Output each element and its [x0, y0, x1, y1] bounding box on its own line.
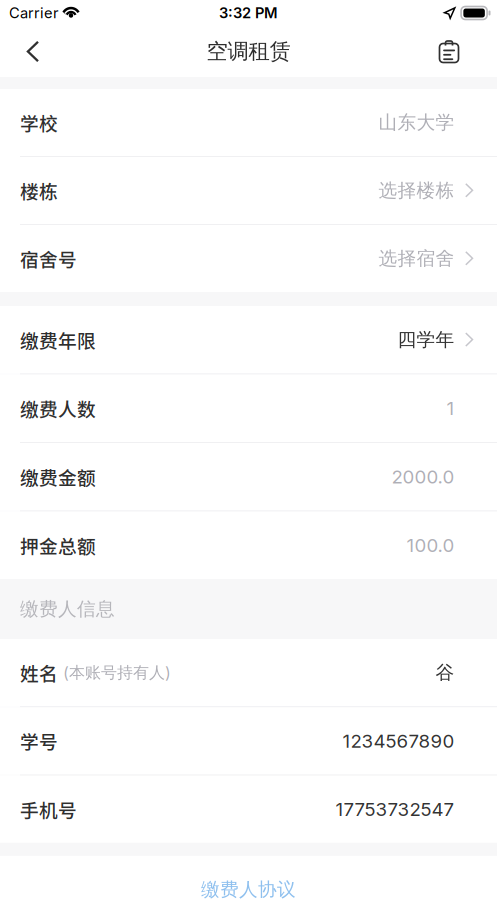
button[interactable]: 返回 — [7, 26, 59, 77]
staticText: 1 — [446, 397, 454, 420]
staticText: 缴费年限 — [20, 326, 96, 353]
button[interactable]: 姓名 — [0, 639, 497, 706]
staticText: 楼栋 — [20, 177, 58, 204]
staticText: 选择楼栋 — [378, 179, 454, 202]
staticText: 100.0 — [406, 534, 454, 557]
staticText: 1234567890 — [342, 730, 454, 752]
staticText: 押金总额 — [20, 532, 96, 559]
button[interactable]: 学校 — [0, 89, 497, 156]
staticText: 17753732547 — [335, 798, 454, 821]
staticText: 缴费人协议 — [201, 878, 296, 901]
staticText: 山东大学 — [378, 111, 454, 134]
button[interactable]: 学号 — [0, 707, 497, 775]
button[interactable]: 缴费人协议 — [0, 856, 497, 902]
staticText: Carrier — [9, 4, 59, 22]
staticText: 宿舍号 — [20, 245, 77, 272]
staticText: 2000.0 — [391, 465, 454, 488]
staticText: 学校 — [20, 109, 58, 136]
staticText: 3:32 PM — [219, 4, 278, 22]
staticText: 选择宿舍 — [378, 247, 454, 270]
staticText: 四学年 — [397, 328, 454, 351]
button[interactable]: 缴费年限 — [0, 306, 497, 373]
staticText: 缴费人数 — [20, 395, 96, 422]
staticText: 缴费金额 — [20, 463, 96, 490]
staticText: 手机号 — [20, 796, 77, 823]
staticText: 学号 — [20, 727, 58, 754]
staticText: 缴费人信息 — [20, 597, 115, 621]
button[interactable]: 手机号 — [0, 776, 497, 843]
staticText: (本账号持有人) — [58, 663, 171, 683]
staticText: 谷 — [435, 661, 454, 684]
button[interactable]: 订单记录 — [423, 26, 475, 77]
button[interactable]: 缴费金额 — [0, 443, 497, 510]
button[interactable]: 楼栋 — [0, 157, 497, 224]
staticText: 姓名 — [20, 659, 58, 686]
button[interactable]: 押金总额 — [0, 511, 497, 579]
button[interactable]: 宿舍号 — [0, 225, 497, 292]
button[interactable]: 缴费人数 — [0, 374, 497, 442]
staticText: 空调租赁 — [206, 38, 290, 65]
